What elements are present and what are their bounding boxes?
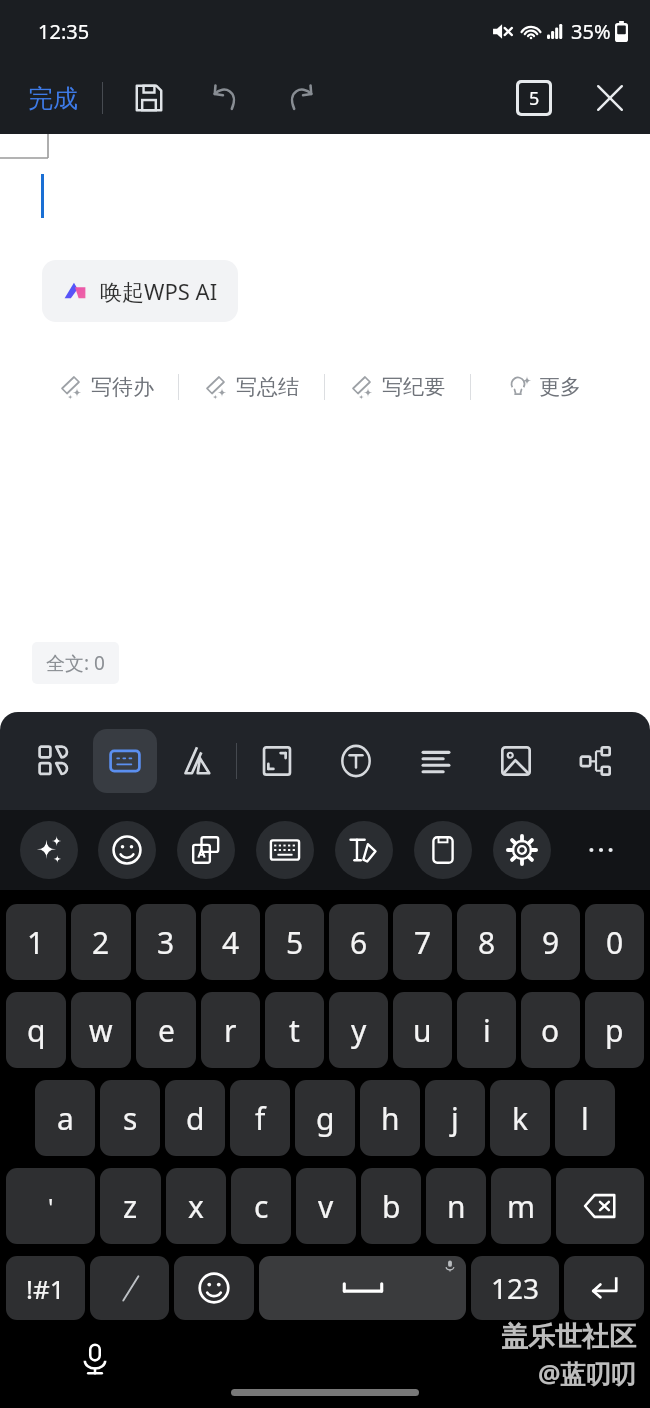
staticText: b xyxy=(382,1186,401,1227)
button[interactable]: AI xyxy=(20,821,78,879)
button[interactable]: Close xyxy=(586,74,634,122)
button[interactable]: Voice input xyxy=(72,1336,118,1382)
button[interactable]: !#1 xyxy=(6,1256,85,1320)
button[interactable]: 写纪要 xyxy=(325,366,470,408)
button[interactable]: Style A xyxy=(157,712,236,810)
button[interactable]: f xyxy=(230,1080,290,1156)
button[interactable]: i xyxy=(457,992,516,1068)
button[interactable]: Page count xyxy=(510,74,558,122)
button[interactable]: a xyxy=(35,1080,95,1156)
button[interactable]: b xyxy=(361,1168,421,1244)
button[interactable]: 1 xyxy=(6,904,66,980)
button[interactable]: 写总结 xyxy=(179,366,324,408)
button[interactable]: Backspace xyxy=(556,1168,644,1244)
staticText: w xyxy=(89,1010,113,1051)
staticText: h xyxy=(381,1098,400,1139)
button[interactable]: 123 xyxy=(471,1256,559,1320)
staticText: 4 xyxy=(222,922,240,963)
button[interactable]: r xyxy=(201,992,260,1068)
button[interactable]: 2 xyxy=(71,904,131,980)
staticText: d xyxy=(186,1098,205,1139)
button[interactable]: l xyxy=(555,1080,615,1156)
staticText: 写总结 xyxy=(236,374,299,400)
button[interactable]: n xyxy=(426,1168,486,1244)
button[interactable]: w xyxy=(71,992,131,1068)
button[interactable]: 0 xyxy=(585,904,644,980)
button[interactable]: s xyxy=(100,1080,160,1156)
button[interactable]: Emoji xyxy=(174,1256,254,1320)
button[interactable]: y xyxy=(329,992,388,1068)
button[interactable]: z xyxy=(100,1168,161,1244)
staticText: 8 xyxy=(478,922,496,963)
staticText: x xyxy=(188,1186,204,1227)
button[interactable]: v xyxy=(296,1168,356,1244)
button[interactable]: ' xyxy=(6,1168,95,1244)
button[interactable]: 完成 xyxy=(24,77,82,120)
button[interactable]: Keyboard panel xyxy=(93,729,157,793)
button[interactable]: q xyxy=(6,992,66,1068)
staticText: l xyxy=(581,1098,589,1139)
button[interactable]: 更多 xyxy=(471,366,616,408)
button[interactable]: Handwriting xyxy=(335,821,393,879)
button[interactable]: Settings xyxy=(493,821,551,879)
button[interactable]: Page xyxy=(237,712,316,810)
staticText: f xyxy=(255,1098,266,1139)
staticText: 7 xyxy=(414,922,432,963)
button[interactable]: Emoji xyxy=(98,821,156,879)
button[interactable]: Image xyxy=(476,712,556,810)
button[interactable]: c xyxy=(231,1168,291,1244)
button[interactable]: 全文: 0 xyxy=(32,642,119,684)
button[interactable]: k xyxy=(490,1080,550,1156)
button[interactable]: Redo xyxy=(279,76,323,120)
button[interactable]: h xyxy=(360,1080,420,1156)
staticText: 123 xyxy=(491,1269,540,1307)
button[interactable]: Enter xyxy=(564,1256,644,1320)
button[interactable]: o xyxy=(521,992,580,1068)
button[interactable]: Object xyxy=(556,712,636,810)
button[interactable]: t xyxy=(265,992,324,1068)
button[interactable]: 写待办 xyxy=(34,366,178,408)
button[interactable]: Space xyxy=(259,1256,466,1320)
button[interactable]: m xyxy=(491,1168,551,1244)
button[interactable]: Clipboard xyxy=(414,821,472,879)
button[interactable]: 3 xyxy=(136,904,196,980)
staticText: r xyxy=(224,1010,237,1051)
button[interactable]: 9 xyxy=(521,904,580,980)
staticText: 更多 xyxy=(539,374,581,400)
button[interactable]: e xyxy=(136,992,196,1068)
staticText: p xyxy=(605,1010,624,1051)
button[interactable]: 7 xyxy=(393,904,452,980)
staticText: 完成 xyxy=(28,83,78,114)
button[interactable]: Keyboard xyxy=(256,821,314,879)
button[interactable]: 5 xyxy=(265,904,324,980)
button[interactable]: g xyxy=(295,1080,355,1156)
staticText: 6 xyxy=(350,922,368,963)
staticText: 3 xyxy=(157,922,175,963)
button[interactable]: Text xyxy=(316,712,396,810)
button[interactable]: More xyxy=(561,810,640,890)
button[interactable]: Undo xyxy=(203,76,247,120)
staticText: o xyxy=(541,1010,560,1051)
staticText: g xyxy=(316,1098,335,1139)
staticText: 5 xyxy=(286,922,304,963)
button[interactable]: Translate xyxy=(177,821,235,879)
button[interactable]: 6 xyxy=(329,904,388,980)
staticText: z xyxy=(123,1186,138,1227)
button[interactable]: Chinese English toggle xyxy=(90,1256,169,1320)
staticText: s xyxy=(123,1098,138,1139)
button[interactable]: Save xyxy=(127,76,171,120)
button[interactable]: 4 xyxy=(201,904,260,980)
button[interactable]: j xyxy=(425,1080,485,1156)
button[interactable]: x xyxy=(166,1168,226,1244)
button[interactable]: 8 xyxy=(457,904,516,980)
staticText: y xyxy=(351,1010,367,1051)
button[interactable]: Apps xyxy=(14,712,93,810)
button[interactable]: p xyxy=(585,992,644,1068)
button[interactable]: u xyxy=(393,992,452,1068)
button[interactable]: Align xyxy=(396,712,476,810)
staticText: 5 xyxy=(529,86,540,111)
staticText: 1 xyxy=(27,922,45,963)
staticText: n xyxy=(447,1186,466,1227)
button[interactable]: d xyxy=(165,1080,225,1156)
button[interactable]: 唤起WPS AI xyxy=(42,260,238,322)
